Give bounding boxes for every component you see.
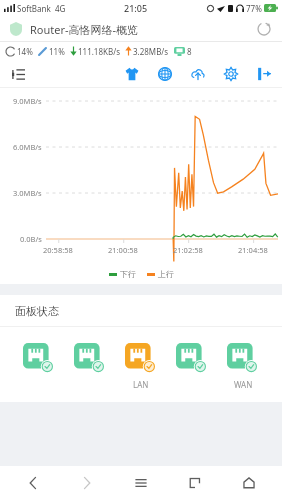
button[interactable]: Settings — [221, 64, 241, 84]
button[interactable]: Home — [228, 466, 270, 500]
button[interactable]: LAN port 2 — [72, 341, 108, 377]
staticText: 3.0MB/s — [13, 188, 42, 198]
staticText: 21:02:58 — [173, 245, 203, 255]
staticText: SoftBank — [17, 3, 51, 14]
button[interactable]: LAN port 3 — [123, 341, 159, 377]
staticText: 21:00:58 — [108, 245, 138, 255]
button[interactable]: Back — [12, 466, 54, 500]
button[interactable]: Refresh — [252, 17, 276, 41]
staticText: 0.0B/s — [20, 234, 42, 244]
button[interactable]: Network — [155, 64, 175, 84]
button[interactable]: LAN port 1 — [21, 341, 57, 377]
staticText: 21:05 — [124, 2, 148, 14]
staticText: 6.0MB/s — [13, 142, 42, 152]
staticText: 4G — [55, 3, 66, 14]
button[interactable]: Menu — [120, 466, 162, 500]
staticText: WAN — [234, 379, 253, 390]
staticText: 面板状态 — [15, 304, 59, 318]
button[interactable]: WAN port — [225, 341, 261, 377]
staticText: 77% — [246, 3, 262, 14]
button[interactable]: Log out — [254, 64, 274, 84]
staticText: 11% — [49, 46, 65, 57]
staticText: 111.18KB/s — [78, 46, 120, 57]
staticText: 上行 — [158, 269, 174, 279]
button[interactable]: LAN port 4 — [174, 341, 210, 377]
button[interactable]: Tabs, 3 open — [174, 466, 216, 500]
staticText: 9.0MB/s — [13, 96, 42, 106]
staticText: Router-高恪网络-概览 — [30, 22, 139, 37]
button[interactable]: Side menu — [6, 62, 30, 86]
staticText: 8 — [187, 46, 192, 57]
staticText: 3.28MB/s — [133, 46, 169, 57]
staticText: LAN — [133, 379, 149, 390]
button[interactable]: Theme — [122, 64, 142, 84]
staticText: 21:04:58 — [238, 245, 268, 255]
staticText: 14% — [17, 46, 33, 57]
staticText: 20:58:58 — [43, 245, 73, 255]
button[interactable]: Forward — [66, 466, 108, 500]
button[interactable]: Cloud upload — [188, 64, 208, 84]
staticText: 下行 — [120, 269, 136, 279]
